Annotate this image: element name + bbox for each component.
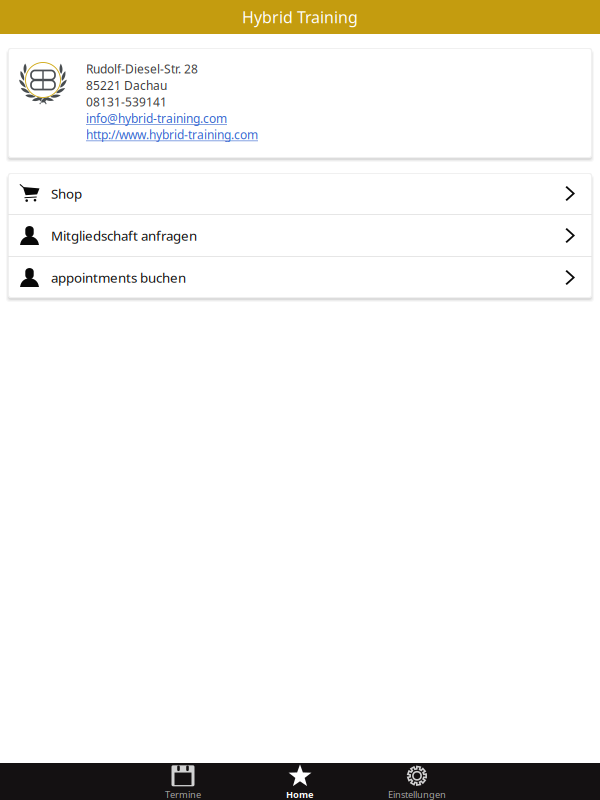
button[interactable]: Home bbox=[241, 764, 358, 800]
staticText: Home bbox=[286, 788, 314, 800]
button[interactable]: http://www.hybrid-training.com bbox=[86, 127, 258, 143]
staticText: info@hybrid-training.com bbox=[86, 110, 227, 126]
staticText: appointments buchen bbox=[51, 269, 186, 286]
button[interactable]: Shop bbox=[8, 173, 592, 214]
staticText: Rudolf-Diesel-Str. 28 bbox=[86, 61, 198, 77]
button[interactable]: Einstellungen bbox=[358, 764, 475, 800]
button[interactable]: info@hybrid-training.com bbox=[86, 110, 227, 126]
staticText: Termine bbox=[165, 788, 201, 800]
button[interactable]: appointments buchen bbox=[8, 257, 592, 298]
staticText: Hybrid Training bbox=[242, 6, 358, 28]
staticText: 85221 Dachau bbox=[86, 77, 167, 93]
staticText: Einstellungen bbox=[388, 788, 446, 800]
staticText: Shop bbox=[51, 185, 82, 202]
staticText: http://www.hybrid-training.com bbox=[86, 127, 258, 143]
staticText: Mitgliedschaft anfragen bbox=[51, 227, 197, 244]
button[interactable]: Termine bbox=[124, 764, 241, 800]
button[interactable]: Mitgliedschaft anfragen bbox=[8, 215, 592, 256]
staticText: 08131-539141 bbox=[86, 94, 167, 110]
